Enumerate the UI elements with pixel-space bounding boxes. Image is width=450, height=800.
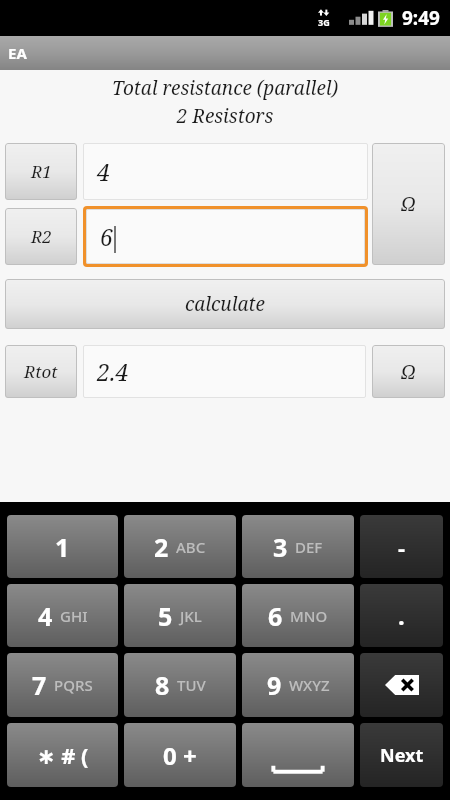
staticText: 6 [100, 221, 113, 252]
button[interactable]: 4 [7, 584, 118, 647]
staticText: R2 [31, 225, 52, 248]
staticText: 9:49 [402, 5, 440, 31]
button[interactable]: 1 [7, 515, 118, 578]
button[interactable]: Rtot [5, 345, 77, 398]
staticText: 4 [97, 156, 110, 187]
staticText: TUV [177, 675, 206, 695]
staticText: 3 [273, 530, 288, 564]
button[interactable]: 2 [124, 515, 236, 578]
button[interactable]: Ω [372, 143, 445, 265]
staticText: R1 [31, 160, 52, 183]
button[interactable]: 3 [242, 515, 354, 578]
button[interactable]: 8 [124, 653, 236, 717]
button[interactable]: 6 [86, 209, 365, 264]
button[interactable]: 2.4 [83, 345, 366, 398]
staticText: 4 [38, 599, 53, 633]
button[interactable]: - [360, 515, 443, 578]
button[interactable]: 6 [242, 584, 354, 647]
staticText: Ω [401, 191, 416, 217]
staticText: Total resistance (parallel) [0, 75, 450, 101]
staticText: Next [380, 743, 424, 768]
staticText: ABC [176, 537, 206, 557]
staticText: EA [8, 43, 27, 63]
staticText: PQRS [54, 675, 93, 695]
button[interactable]: calculate [5, 279, 445, 329]
staticText: 9 [267, 668, 282, 702]
staticText: DEF [295, 537, 323, 557]
button[interactable]: Ω [372, 345, 445, 398]
button[interactable]: ∗ # ( [7, 723, 118, 787]
button[interactable]: Backspace [360, 653, 443, 717]
staticText: 0 + [163, 739, 197, 772]
button[interactable]: EA [0, 36, 450, 70]
button[interactable]: 0 + [124, 723, 236, 787]
staticText: 6 [268, 599, 283, 633]
staticText: . [398, 599, 405, 632]
button[interactable]: R2 [5, 208, 77, 265]
staticText: 7 [32, 668, 47, 702]
staticText: MNO [290, 606, 328, 626]
button[interactable]: 5 [124, 584, 236, 647]
button[interactable]: R1 [5, 143, 77, 200]
staticText: 5 [158, 599, 173, 633]
staticText: 3G [318, 16, 330, 28]
button[interactable]: . [360, 584, 443, 647]
staticText: Rtot [24, 360, 58, 383]
staticText: ∗ # ( [37, 740, 89, 770]
button[interactable]: 7 [7, 653, 118, 717]
staticText: WXYZ [289, 675, 330, 695]
staticText: Ω [401, 359, 416, 385]
staticText: 1 [55, 530, 70, 564]
staticText: 2 Resistors [0, 103, 450, 129]
staticText: 2.4 [97, 356, 129, 387]
staticText: JKL [180, 606, 202, 626]
button[interactable]: 9 [242, 653, 354, 717]
button[interactable]: Next [360, 723, 443, 787]
staticText: GHI [60, 606, 88, 626]
staticText: calculate [185, 291, 265, 317]
button[interactable]: 4 [83, 143, 368, 200]
staticText: - [398, 532, 406, 562]
staticText: 8 [155, 668, 170, 702]
staticText: 2 [154, 530, 169, 564]
button[interactable]: Space [242, 723, 354, 787]
